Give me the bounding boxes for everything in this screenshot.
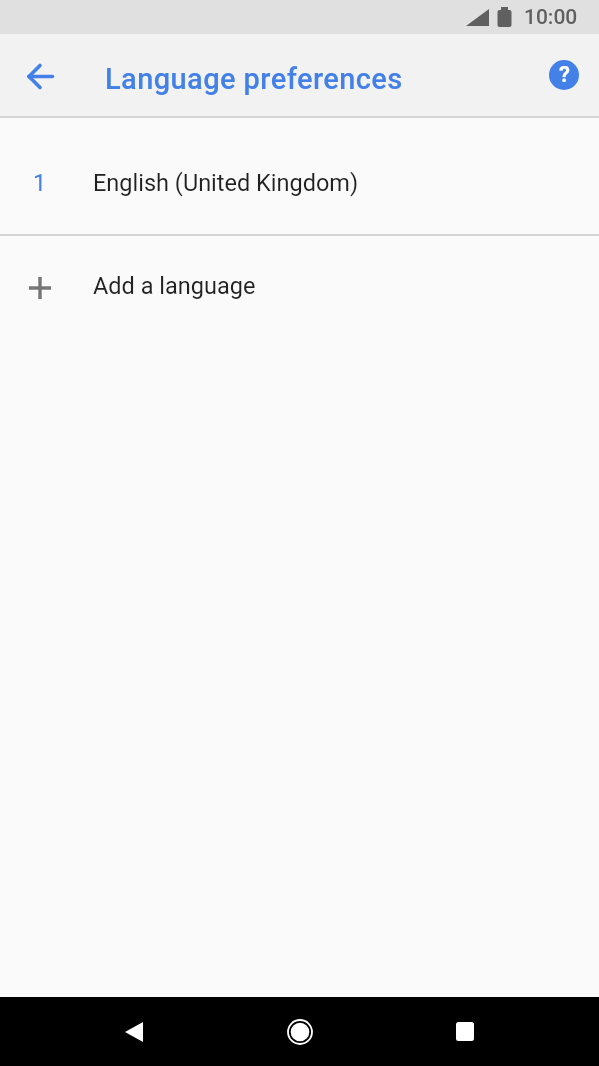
- button[interactable]: [12, 48, 68, 104]
- button[interactable]: Add a language: [0, 236, 599, 340]
- staticText: Add a language: [93, 272, 256, 300]
- button[interactable]: [276, 1008, 324, 1056]
- button[interactable]: ?: [542, 53, 586, 97]
- button[interactable]: [441, 1008, 489, 1056]
- staticText: 10:00: [524, 5, 578, 30]
- staticText: 1: [33, 169, 47, 197]
- staticText: English (United Kingdom): [93, 169, 359, 197]
- staticText: Language preferences: [105, 62, 403, 96]
- button[interactable]: 1: [0, 118, 599, 234]
- staticText: ?: [559, 62, 570, 88]
- button[interactable]: [110, 1008, 158, 1056]
